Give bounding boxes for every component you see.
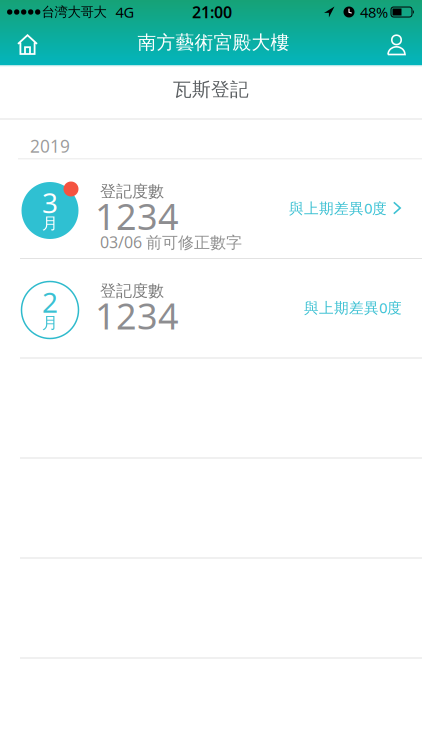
staticText: 21:00: [192, 1, 232, 23]
staticText: 與上期差異0度: [289, 198, 387, 218]
staticText: 3: [42, 184, 58, 221]
staticText: 48%: [360, 2, 388, 22]
button[interactable]: 2: [0, 259, 422, 357]
staticText: 2: [42, 283, 58, 321]
staticText: 登記度數: [100, 182, 164, 201]
staticText: 月: [42, 214, 58, 233]
staticText: 登記度數: [100, 281, 164, 301]
staticText: 月: [42, 313, 58, 333]
staticText: 1234: [95, 192, 179, 240]
button[interactable]: 3: [0, 159, 422, 258]
staticText: 瓦斯登記: [173, 78, 249, 101]
staticText: 03/06 前可修正數字: [100, 231, 242, 253]
staticText: 2019: [30, 134, 70, 157]
staticText: 與上期差異0度: [304, 298, 402, 317]
staticText: 1234: [95, 292, 179, 339]
staticText: 南方藝術宮殿大樓: [137, 31, 289, 54]
button[interactable]: Profile: [387, 23, 422, 65]
button[interactable]: Home: [0, 24, 38, 65]
staticText: 4G: [115, 2, 134, 22]
staticText: 台湾大哥大: [41, 4, 106, 20]
